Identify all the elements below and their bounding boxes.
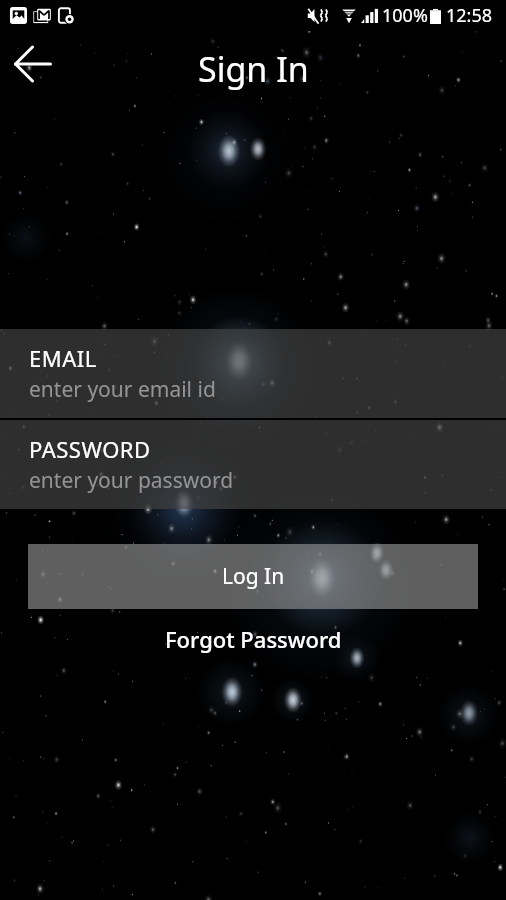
staticText: 12:58 <box>446 3 493 28</box>
other: File notification <box>57 6 76 25</box>
staticText: enter your password <box>29 466 234 495</box>
button[interactable]: PASSWORD <box>0 420 506 509</box>
button[interactable]: Back <box>0 34 66 100</box>
staticText: Sign In <box>198 46 309 92</box>
other: New mail <box>33 6 52 25</box>
staticText: enter your email id <box>29 375 216 404</box>
button[interactable]: EMAIL <box>0 329 506 418</box>
button[interactable]: Log In <box>28 544 478 609</box>
other: Screenshot saved <box>10 7 27 24</box>
other: Wi-Fi <box>342 7 356 24</box>
other: Battery full <box>430 8 441 24</box>
staticText: PASSWORD <box>29 434 151 464</box>
staticText: EMAIL <box>29 343 97 373</box>
other: Sound off <box>307 7 332 24</box>
other: Mobile signal <box>361 9 378 23</box>
staticText: Log In <box>222 562 285 591</box>
staticText: Forgot Password <box>165 624 342 654</box>
staticText: 100% <box>382 3 428 28</box>
button[interactable]: Forgot Password <box>153 618 354 660</box>
